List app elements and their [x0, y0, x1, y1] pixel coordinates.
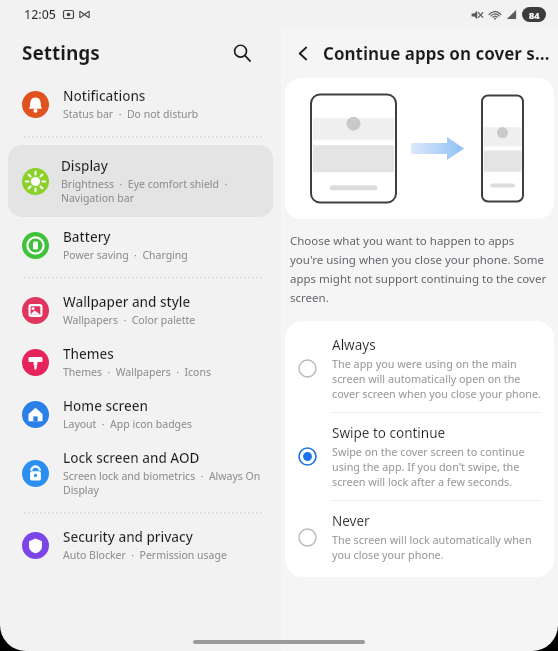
button[interactable]: Back [287, 37, 319, 69]
staticText: Security and privacy [63, 528, 193, 546]
staticText: Home screen [63, 397, 148, 415]
staticText: Screen lock and biometrics · Always On D… [63, 469, 261, 497]
staticText: Status bar · Do not disturb [63, 107, 199, 121]
staticText: Brightness · Eye comfort shield · Naviga… [61, 177, 228, 205]
button[interactable]: Always [285, 325, 554, 412]
staticText: The screen will lock automatically when … [332, 532, 542, 562]
button[interactable]: Notifications [0, 78, 281, 130]
staticText: Wallpapers · Color palette [63, 313, 196, 327]
staticText: Lock screen and AOD [63, 449, 200, 467]
staticText: Power saving · Charging [63, 248, 188, 262]
staticText: Battery [63, 228, 111, 246]
staticText: Continue apps on cover s… [323, 42, 550, 65]
staticText: Choose what you want to happen to apps y… [290, 233, 549, 305]
staticText: Wallpaper and style [63, 293, 191, 311]
button[interactable]: Display [8, 145, 273, 217]
button[interactable]: Themes [0, 336, 281, 388]
button[interactable]: Security and privacy [0, 519, 281, 571]
staticText: Layout · App icon badges [63, 417, 193, 431]
staticText: Notifications [63, 87, 146, 105]
staticText: Never [332, 512, 370, 530]
staticText: Themes · Wallpapers · Icons [63, 365, 211, 379]
staticText: Always [332, 336, 376, 354]
staticText: Auto Blocker · Permission usage [63, 548, 227, 562]
button[interactable]: Swipe to continue [285, 413, 554, 500]
button[interactable]: Home screen [0, 388, 281, 440]
button[interactable]: Search [225, 36, 259, 70]
button[interactable]: Battery [0, 219, 281, 271]
staticText: The app you were using on the main scree… [332, 356, 542, 401]
button[interactable]: Never [285, 501, 554, 573]
staticText: Settings [22, 40, 100, 66]
staticText: 12:05 [24, 6, 57, 23]
button[interactable]: Lock screen and AOD [0, 440, 281, 506]
staticText: Swipe on the cover screen to continue us… [332, 444, 542, 489]
staticText: Swipe to continue [332, 424, 446, 442]
staticText: Display [61, 157, 108, 175]
button[interactable]: Wallpaper and style [0, 284, 281, 336]
staticText: Themes [63, 345, 114, 363]
staticText: 84 [529, 9, 540, 21]
